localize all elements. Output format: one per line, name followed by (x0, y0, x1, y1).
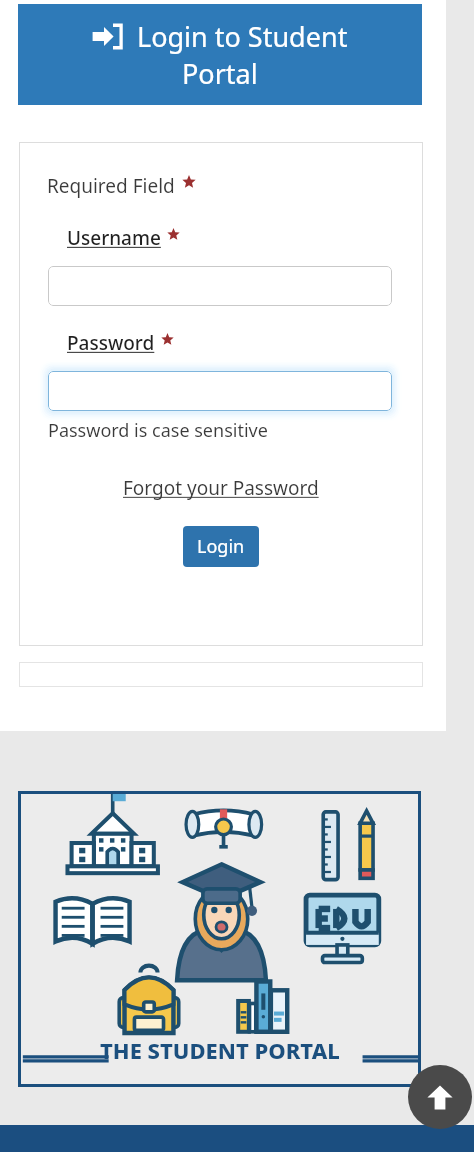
staticText: Portal (182, 55, 258, 92)
staticText: THE STUDENT PORTAL (100, 1035, 340, 1065)
button[interactable]: Login (183, 526, 259, 567)
staticText: Username (67, 225, 161, 251)
staticText: Forgot your Password (123, 475, 319, 501)
staticText: Password is case sensitive (48, 418, 268, 443)
staticText: Password (67, 330, 155, 356)
button[interactable]: Scroll to top (408, 1065, 472, 1129)
button[interactable]: Password field (48, 371, 392, 411)
staticText: Login to Student (137, 18, 348, 55)
staticText: Required Field (47, 173, 175, 199)
button[interactable]: Forgot your Password (119, 473, 323, 503)
staticText: Login (197, 534, 245, 559)
button[interactable]: Username field (48, 266, 392, 306)
button[interactable]: Login to Student (18, 4, 422, 105)
